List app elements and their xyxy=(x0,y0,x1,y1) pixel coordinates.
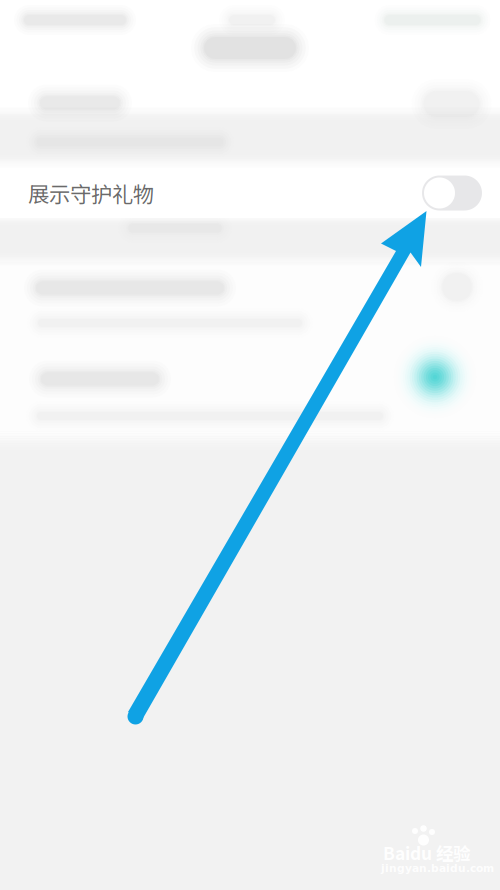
staticText: jingyan.baidu.com xyxy=(381,862,494,874)
staticText: Baidu 经验 xyxy=(383,840,470,865)
button[interactable]: 展示守护礼物 xyxy=(0,168,500,218)
staticText: 展示守护礼物 xyxy=(28,178,154,208)
